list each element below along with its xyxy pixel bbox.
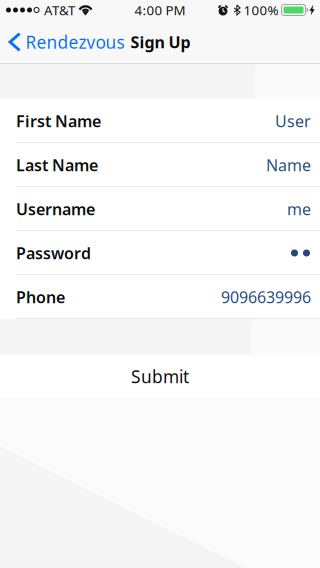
staticText: 9096639996 bbox=[221, 286, 311, 308]
staticText: Last Name bbox=[16, 154, 98, 176]
staticText: Submit bbox=[131, 365, 189, 388]
button[interactable]: Submit bbox=[0, 355, 320, 398]
staticText: User bbox=[275, 110, 311, 132]
staticText: Phone bbox=[16, 286, 65, 308]
staticText: Password bbox=[16, 242, 91, 264]
button[interactable]: Rendezvous bbox=[0, 24, 124, 59]
staticText: Rendezvous bbox=[25, 30, 124, 53]
staticText: me bbox=[287, 198, 311, 220]
staticText: Sign Up bbox=[130, 31, 190, 53]
staticText: First Name bbox=[16, 110, 101, 132]
staticText: 100% bbox=[243, 1, 278, 19]
staticText: 4:00 PM bbox=[134, 1, 185, 19]
staticText: AT&T bbox=[44, 1, 75, 19]
staticText: Username bbox=[16, 198, 95, 220]
staticText: Name bbox=[266, 154, 311, 176]
